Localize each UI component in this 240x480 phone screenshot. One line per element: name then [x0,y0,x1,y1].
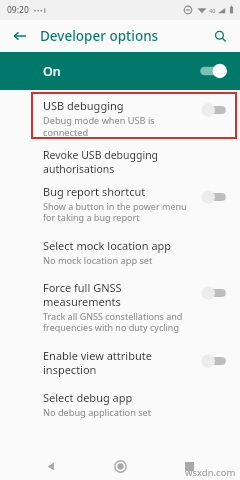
staticText: Enable view attribute inspection [43,348,152,377]
button[interactable]: Back [33,452,69,480]
staticText: Track all GNSS constellations and freque… [43,310,183,334]
staticText: No debug application set [43,406,152,419]
button[interactable]: Back [8,24,32,48]
staticText: 40 [209,7,216,14]
staticText: Bug report shortcut [43,184,146,199]
staticText: Show a button in the power menu for taki… [43,200,187,224]
staticText: Debug mode when USB is connected [43,114,155,138]
staticText: No mock location app set [43,254,153,267]
staticText: 09:20 [7,4,29,16]
button[interactable]: Enable view attribute inspection [0,341,240,383]
button[interactable]: Recent apps [171,452,207,480]
staticText: wsxdn.com [185,466,236,479]
staticText: On [43,63,61,80]
button[interactable]: Force full GNSS measurements [0,273,240,341]
staticText: Developer options [40,27,159,45]
button[interactable]: On [0,52,240,90]
staticText: Revoke USB debugging authorisations [43,148,196,176]
button[interactable]: Home [102,452,138,480]
button[interactable]: Bug report shortcut [0,177,240,231]
button[interactable]: USB debugging [0,90,240,138]
button[interactable]: Search [208,24,232,48]
button[interactable]: Revoke USB debugging authorisations [0,141,240,177]
staticText: Force full GNSS measurements [43,280,122,309]
staticText: Select debug app [43,390,133,405]
button[interactable]: Select mock location app [0,231,240,273]
staticText: USB debugging [43,98,124,113]
button[interactable]: Select debug app [0,383,240,423]
staticText: Select mock location app [43,238,172,253]
